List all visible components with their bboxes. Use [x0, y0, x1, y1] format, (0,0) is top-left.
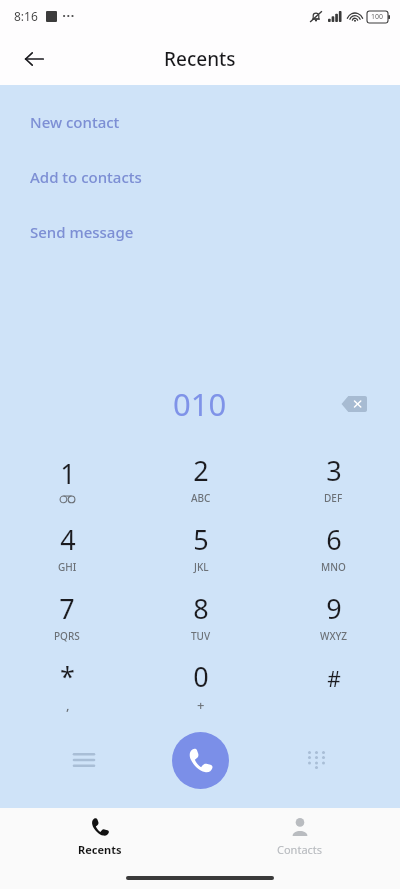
staticText: ABC	[191, 491, 211, 505]
staticText: 8	[193, 590, 209, 627]
staticText: Contacts	[277, 842, 323, 857]
staticText: 010	[173, 383, 227, 425]
button[interactable]: New contact	[0, 109, 400, 135]
button[interactable]: Call	[172, 732, 229, 789]
staticText: *	[60, 658, 75, 695]
staticText: 7	[59, 590, 75, 627]
staticText: 0	[193, 658, 209, 695]
staticText: PQRS	[54, 629, 80, 643]
button[interactable]: Dialpad	[294, 738, 338, 782]
button[interactable]: Backspace	[334, 384, 374, 424]
staticText: ,	[66, 696, 70, 714]
staticText: +	[197, 696, 205, 714]
button[interactable]: Menu	[62, 738, 106, 782]
staticText: 6	[326, 521, 342, 558]
button[interactable]: 2	[134, 444, 267, 513]
button[interactable]: Recents	[0, 808, 200, 866]
staticText: 1	[60, 455, 76, 492]
button[interactable]: 1	[0, 444, 134, 513]
staticText: 8:16	[14, 8, 38, 24]
button[interactable]: #	[267, 651, 400, 720]
button[interactable]: Contacts	[200, 808, 400, 866]
button[interactable]: 6	[267, 513, 400, 582]
button[interactable]: 7	[0, 582, 134, 651]
button[interactable]: 4	[0, 513, 134, 582]
staticText: WXYZ	[320, 629, 348, 643]
staticText: Add to contacts	[30, 167, 142, 187]
staticText: Send message	[30, 222, 134, 242]
staticText: Recents	[164, 46, 236, 72]
staticText: MNO	[321, 560, 346, 574]
staticText: 5	[193, 521, 209, 558]
button[interactable]: 0	[134, 651, 267, 720]
staticText: JKL	[194, 560, 209, 574]
staticText: 4	[60, 521, 76, 558]
button[interactable]: 5	[134, 513, 267, 582]
staticText: 2	[193, 452, 209, 489]
staticText: TUV	[191, 629, 211, 643]
button[interactable]: *	[0, 651, 134, 720]
staticText: 3	[326, 452, 342, 489]
staticText: 9	[326, 590, 342, 627]
staticText: New contact	[30, 112, 120, 132]
staticText: GHI	[58, 560, 77, 574]
button[interactable]: 9	[267, 582, 400, 651]
button[interactable]: Send message	[0, 219, 400, 245]
staticText: Recents	[78, 842, 122, 857]
staticText: 100	[371, 12, 384, 22]
staticText: DEF	[324, 491, 343, 505]
button[interactable]: 8	[134, 582, 267, 651]
button[interactable]: Back	[14, 39, 54, 79]
staticText: #	[327, 665, 341, 694]
button[interactable]: Add to contacts	[0, 164, 400, 190]
button[interactable]: 3	[267, 444, 400, 513]
